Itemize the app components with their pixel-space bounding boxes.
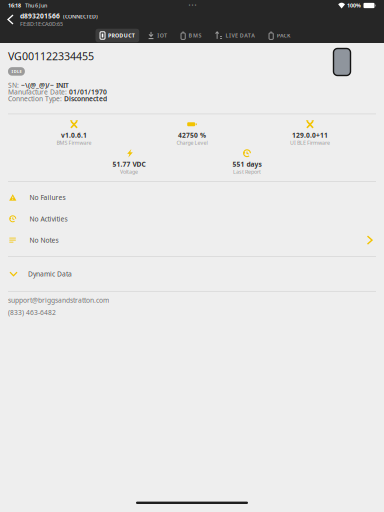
staticText: SN: [8, 81, 19, 90]
button[interactable]: No Failures [0, 187, 384, 208]
staticText: No Notes [29, 236, 58, 245]
staticText: IOT [157, 32, 167, 39]
staticText: 01/01/1970 [69, 87, 107, 96]
staticText: 100% [347, 2, 361, 9]
staticText: Thu 6 Jun [25, 2, 47, 9]
staticText: v1.0.6.1 [61, 131, 87, 140]
button[interactable]: IOT [144, 29, 172, 42]
staticText: 129.0.0+11 [292, 131, 328, 140]
staticText: 551 days [232, 160, 261, 169]
button[interactable]: No Notes [0, 229, 384, 251]
staticText: VG001122334455 [8, 49, 94, 63]
staticText: Connection Type: [8, 94, 62, 103]
staticText: 42750 % [178, 131, 206, 140]
staticText: BMS [189, 32, 201, 39]
staticText: ~\(@_@)/~ INIT [21, 81, 69, 90]
staticText: 51.77 VDC [112, 160, 145, 169]
staticText: • • • [189, 2, 197, 9]
staticText: UI BLE Firmware [290, 139, 330, 146]
staticText: BMS Firmware [56, 139, 91, 146]
button[interactable]: No Activities [0, 208, 384, 229]
staticText: Voltage [120, 168, 138, 175]
staticText: FE:8D:1E:CA:0D:65 [20, 20, 63, 27]
staticText: Dynamic Data [28, 269, 72, 278]
button[interactable]: Dynamic Data [0, 257, 384, 291]
button[interactable]: Back [0, 11, 20, 28]
staticText: 16:18 [8, 2, 21, 9]
button[interactable]: LIVE DATA [210, 29, 260, 42]
staticText: support@briggsandstratton.com [8, 296, 109, 305]
staticText: No Activities [29, 214, 67, 223]
button[interactable]: BMS [176, 29, 206, 42]
staticText: IDLE [11, 69, 21, 74]
button[interactable]: PACK [264, 29, 294, 42]
button[interactable]: PRODUCT [95, 29, 139, 42]
staticText: (CONNECTED) [63, 13, 98, 20]
staticText: No Failures [29, 193, 65, 202]
staticText: Manufacture Date: [8, 87, 67, 96]
staticText: Last Report [233, 168, 261, 175]
staticText: Charge Level [176, 139, 207, 146]
staticText: Disconnected [64, 94, 107, 103]
staticText: LIVE DATA [225, 32, 255, 39]
staticText: d893201566 [20, 11, 60, 20]
staticText: PACK [277, 32, 290, 39]
staticText: PRODUCT [108, 32, 135, 39]
staticText: (833) 463-6482 [8, 308, 56, 317]
